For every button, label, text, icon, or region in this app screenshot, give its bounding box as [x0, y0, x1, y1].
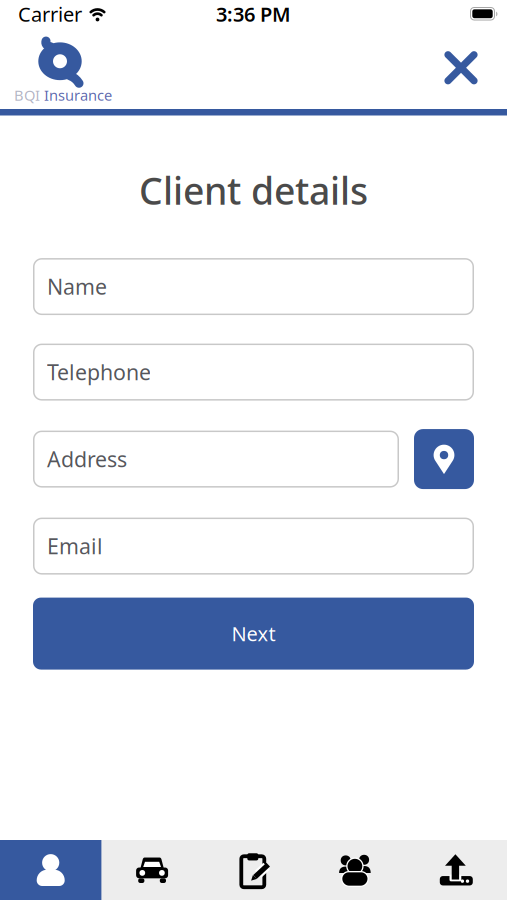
button[interactable]: Pick address on map — [414, 429, 474, 489]
staticText: Address — [47, 445, 127, 473]
button[interactable]: Close — [434, 51, 507, 85]
staticText: Telephone — [47, 358, 151, 386]
staticText: Client details — [139, 165, 368, 215]
button[interactable]: Clients — [0, 840, 101, 900]
button[interactable]: Next — [33, 598, 474, 670]
button[interactable]: Vehicles — [101, 840, 203, 900]
button[interactable]: Upload — [406, 840, 507, 900]
staticText: BQI — [14, 85, 40, 105]
staticText: Carrier — [18, 1, 82, 27]
button[interactable]: Name — [33, 258, 474, 315]
staticText: Name — [47, 272, 107, 301]
staticText: Email — [47, 532, 103, 560]
staticText: Next — [231, 620, 275, 647]
button[interactable]: Forms — [203, 840, 304, 900]
button[interactable]: Telephone — [33, 344, 474, 401]
staticText: Insurance — [44, 85, 112, 105]
button[interactable]: Contacts — [304, 840, 406, 900]
button[interactable]: Address — [33, 431, 399, 488]
staticText: 3:36 PM — [216, 1, 291, 27]
button[interactable]: Email — [33, 518, 474, 575]
